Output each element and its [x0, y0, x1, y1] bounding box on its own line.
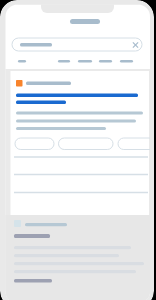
button[interactable]: [0, 0, 156, 300]
